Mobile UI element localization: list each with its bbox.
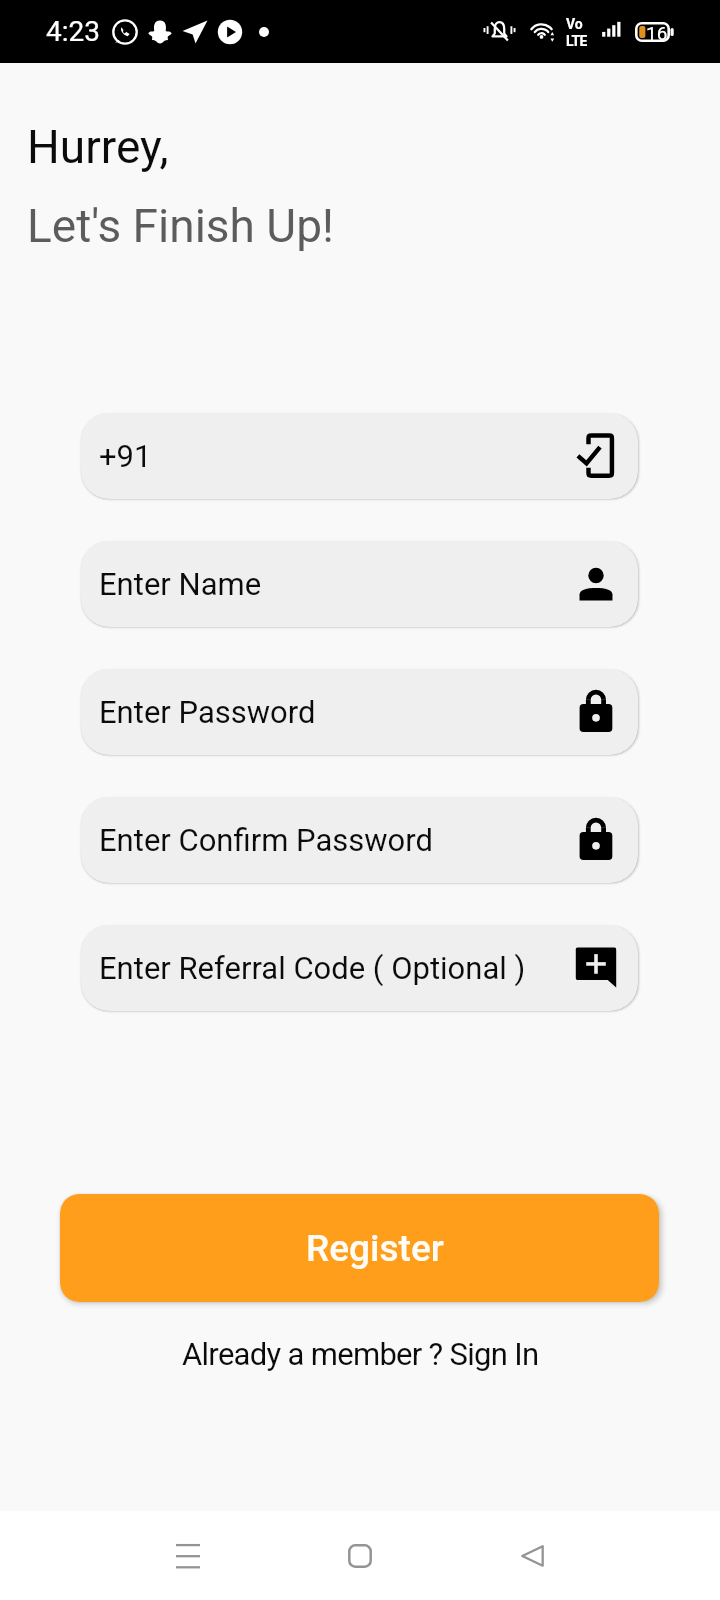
- other: Name: [571, 559, 621, 609]
- button[interactable]: Enter Password: [81, 669, 638, 755]
- other: Password: [571, 687, 621, 737]
- button[interactable]: Enter Confirm Password: [81, 797, 638, 883]
- other: Confirm password: [571, 815, 621, 865]
- staticText: Hurrey,: [27, 120, 169, 174]
- other: Referral code: [571, 943, 621, 993]
- staticText: Already a member ? Sign In: [182, 1336, 539, 1372]
- other: Verify phone number: [571, 431, 621, 481]
- staticText: Enter Referral Code ( Optional ): [99, 950, 571, 986]
- staticText: Vo: [566, 16, 583, 32]
- staticText: Let's Finish Up!: [27, 199, 334, 253]
- button[interactable]: Recent apps: [144, 1511, 232, 1600]
- button[interactable]: Register: [60, 1194, 659, 1302]
- staticText: Register: [306, 1227, 444, 1270]
- button[interactable]: Already a member ? Sign In: [172, 1331, 549, 1377]
- button[interactable]: Enter Referral Code ( Optional ): [81, 925, 638, 1011]
- staticText: +91: [99, 438, 571, 474]
- staticText: Enter Password: [99, 694, 571, 730]
- staticText: Enter Confirm Password: [99, 822, 571, 858]
- staticText: 16: [646, 22, 668, 42]
- staticText: 4:23: [46, 15, 100, 48]
- staticText: LTE: [566, 33, 587, 48]
- button[interactable]: Home: [316, 1511, 404, 1600]
- button[interactable]: +91: [81, 413, 638, 499]
- button[interactable]: Enter Name: [81, 541, 638, 627]
- button[interactable]: Back: [488, 1511, 576, 1600]
- staticText: Enter Name: [99, 566, 571, 602]
